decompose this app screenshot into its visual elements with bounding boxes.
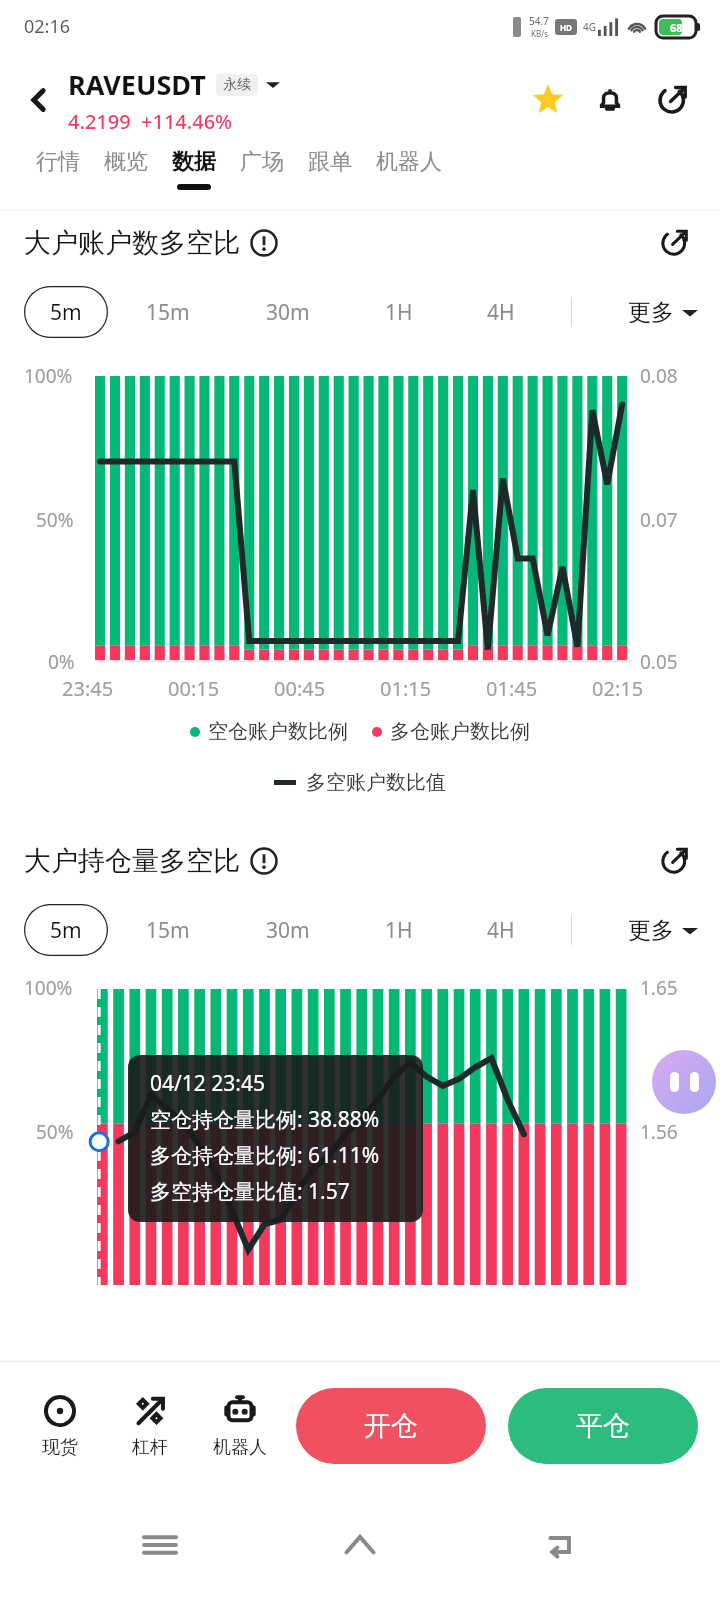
staticText: 概览 bbox=[104, 148, 148, 176]
staticText: 广场 bbox=[240, 148, 284, 176]
staticText: KB/s bbox=[531, 28, 548, 39]
button[interactable]: 永续 bbox=[223, 76, 251, 94]
staticText: 4G bbox=[583, 20, 596, 34]
button[interactable]: Favorite bbox=[524, 76, 572, 124]
staticText: 机器人 bbox=[213, 1436, 267, 1459]
staticText: 1.65 bbox=[640, 975, 678, 1001]
staticText: 100% bbox=[24, 975, 73, 1001]
staticText: 0.05 bbox=[640, 649, 678, 675]
button[interactable]: 30m bbox=[228, 286, 348, 338]
staticText: 23:45 bbox=[62, 675, 114, 702]
button[interactable]: 行情 bbox=[24, 148, 92, 184]
staticText: 杠杆 bbox=[132, 1436, 168, 1459]
staticText: 00:15 bbox=[168, 675, 220, 702]
staticText: 4.2199 bbox=[68, 108, 131, 135]
staticText: HD bbox=[560, 22, 572, 33]
button[interactable]: Info bbox=[250, 229, 278, 257]
staticText: 1.56 bbox=[640, 1119, 678, 1145]
button[interactable]: 更多 bbox=[628, 916, 698, 945]
button[interactable]: Share bbox=[648, 76, 696, 124]
button[interactable]: Back bbox=[520, 1505, 600, 1585]
staticText: 多空账户数比值 bbox=[306, 770, 446, 795]
button[interactable]: Assistant bbox=[652, 1050, 716, 1114]
button[interactable]: Share chart bbox=[652, 221, 696, 265]
staticText: 多仓账户数比例 bbox=[390, 719, 530, 744]
button[interactable]: 5m bbox=[24, 904, 108, 956]
staticText: 01:45 bbox=[486, 675, 538, 702]
staticText: 空仓持仓量比例: 38.88% bbox=[150, 1105, 380, 1134]
staticText: 大户持仓量多空比 bbox=[24, 844, 240, 878]
button[interactable]: 数据 bbox=[160, 148, 228, 190]
button[interactable]: 更多 bbox=[628, 298, 698, 327]
button[interactable]: 4H bbox=[450, 904, 552, 956]
button[interactable]: Info bbox=[250, 847, 278, 875]
staticText: 68 bbox=[670, 20, 683, 35]
staticText: 更多 bbox=[628, 298, 674, 327]
staticText: 平仓 bbox=[576, 1409, 630, 1443]
staticText: 4H bbox=[487, 298, 515, 327]
staticText: 30m bbox=[266, 916, 310, 945]
staticText: 02:16 bbox=[24, 14, 71, 39]
staticText: 00:45 bbox=[274, 675, 326, 702]
staticText: 开仓 bbox=[364, 1409, 418, 1443]
button[interactable]: 概览 bbox=[92, 148, 160, 184]
staticText: +114.46% bbox=[141, 108, 233, 135]
button[interactable]: 平仓 bbox=[508, 1388, 698, 1464]
staticText: 更多 bbox=[628, 916, 674, 945]
staticText: 0% bbox=[48, 649, 75, 675]
button[interactable]: 15m bbox=[108, 904, 228, 956]
button[interactable]: 机器人 bbox=[364, 148, 454, 184]
staticText: 1H bbox=[385, 298, 413, 327]
staticText: 01:15 bbox=[380, 675, 432, 702]
staticText: 多空持仓量比值: 1.57 bbox=[150, 1177, 350, 1206]
button[interactable]: 5m bbox=[24, 286, 108, 338]
staticText: 5m bbox=[50, 916, 82, 945]
button[interactable]: 广场 bbox=[228, 148, 296, 184]
staticText: 54.7 bbox=[529, 14, 549, 28]
staticText: 5m bbox=[50, 298, 82, 327]
staticText: 04/12 23:45 bbox=[150, 1069, 265, 1098]
staticText: 100% bbox=[24, 363, 73, 389]
staticText: 跟单 bbox=[308, 148, 352, 176]
staticText: 0.08 bbox=[640, 363, 678, 389]
staticText: 行情 bbox=[36, 148, 80, 176]
button[interactable]: 跟单 bbox=[296, 148, 364, 184]
staticText: 空仓账户数比例 bbox=[208, 719, 348, 744]
button[interactable]: Alerts bbox=[586, 76, 634, 124]
staticText: 30m bbox=[266, 298, 310, 327]
button[interactable]: 15m bbox=[108, 286, 228, 338]
staticText: 0.07 bbox=[640, 507, 678, 533]
button[interactable]: 4H bbox=[450, 286, 552, 338]
staticText: RAVEUSDT bbox=[68, 66, 206, 103]
staticText: 数据 bbox=[172, 148, 216, 176]
button[interactable] bbox=[266, 78, 280, 92]
button[interactable]: 杠杆 bbox=[112, 1393, 188, 1459]
button[interactable]: Back bbox=[14, 75, 64, 125]
button[interactable]: 现货 bbox=[22, 1393, 98, 1459]
staticText: 15m bbox=[146, 298, 190, 327]
staticText: 50% bbox=[36, 507, 74, 533]
staticText: 02:15 bbox=[592, 675, 644, 702]
button[interactable]: 机器人 bbox=[202, 1393, 278, 1459]
staticText: 1H bbox=[385, 916, 413, 945]
button[interactable]: 开仓 bbox=[296, 1388, 486, 1464]
button[interactable]: 1H bbox=[348, 286, 450, 338]
staticText: 4H bbox=[487, 916, 515, 945]
staticText: 15m bbox=[146, 916, 190, 945]
staticText: 永续 bbox=[223, 76, 251, 94]
staticText: 多仓持仓量比例: 61.11% bbox=[150, 1141, 380, 1170]
button[interactable]: 1H bbox=[348, 904, 450, 956]
staticText: 50% bbox=[36, 1119, 74, 1145]
staticText: 现货 bbox=[42, 1436, 78, 1459]
button[interactable]: Share chart bbox=[652, 839, 696, 883]
button[interactable]: Home bbox=[320, 1505, 400, 1585]
button[interactable]: 30m bbox=[228, 904, 348, 956]
staticText: 大户账户数多空比 bbox=[24, 226, 240, 260]
button[interactable]: Recents bbox=[120, 1505, 200, 1585]
staticText: 机器人 bbox=[376, 148, 442, 176]
